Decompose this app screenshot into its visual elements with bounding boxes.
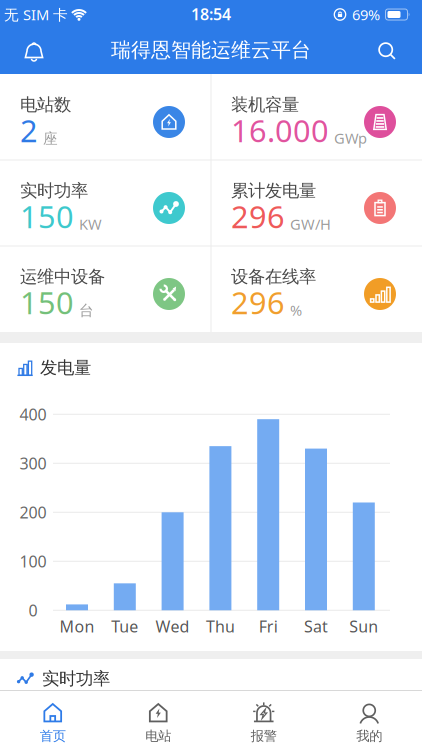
staticText: Wed xyxy=(156,616,190,637)
staticText: Thu xyxy=(206,616,235,637)
staticText: 2 xyxy=(20,110,38,151)
button[interactable]: 电站数 xyxy=(0,74,211,160)
button[interactable]: 设备在线率 xyxy=(211,246,422,332)
staticText: 0 xyxy=(28,600,37,621)
button[interactable]: 实时功率 xyxy=(0,160,211,246)
button[interactable] xyxy=(14,32,54,72)
staticText: % xyxy=(290,300,302,320)
staticText: 100 xyxy=(19,551,46,572)
button[interactable] xyxy=(367,31,407,71)
staticText: GWp xyxy=(334,128,367,148)
staticText: 150 xyxy=(20,196,74,237)
staticText: Sun xyxy=(349,616,378,637)
staticText: 瑞得恩智能运维云平台 xyxy=(111,38,311,62)
staticText: KW xyxy=(79,214,102,234)
staticText: 400 xyxy=(19,404,46,425)
button[interactable]: 首页 xyxy=(0,696,105,748)
staticText: 16.000 xyxy=(231,110,329,151)
staticText: GW/H xyxy=(290,214,331,234)
staticText: Tue xyxy=(111,616,138,637)
staticText: Sat xyxy=(304,616,328,637)
staticText: 69% xyxy=(352,5,380,24)
staticText: 台 xyxy=(79,302,94,320)
staticText: Fri xyxy=(259,616,278,637)
staticText: 装机容量 xyxy=(231,94,299,115)
button[interactable]: 报警 xyxy=(211,696,316,748)
staticText: 发电量 xyxy=(40,357,91,378)
staticText: 我的 xyxy=(356,728,382,744)
button[interactable]: 装机容量 xyxy=(211,74,422,160)
staticText: 18:54 xyxy=(191,3,231,25)
staticText: 首页 xyxy=(40,728,66,744)
staticText: Mon xyxy=(59,616,94,637)
staticText: 报警 xyxy=(251,728,277,744)
staticText: 座 xyxy=(43,130,58,148)
staticText: 296 xyxy=(231,196,285,237)
staticText: 运维中设备 xyxy=(20,266,105,287)
staticText: 实时功率 xyxy=(20,180,88,201)
staticText: 电站数 xyxy=(20,94,71,115)
button[interactable]: 我的 xyxy=(316,696,422,748)
staticText: 200 xyxy=(19,502,46,523)
staticText: 296 xyxy=(231,282,285,323)
staticText: 150 xyxy=(20,282,74,323)
staticText: 累计发电量 xyxy=(231,180,316,201)
staticText: 无 SIM 卡 xyxy=(4,5,68,24)
staticText: 300 xyxy=(19,453,46,474)
staticText: 实时功率 xyxy=(42,668,110,689)
button[interactable]: 电站 xyxy=(105,696,211,748)
button[interactable]: 运维中设备 xyxy=(0,246,211,332)
button[interactable]: 累计发电量 xyxy=(211,160,422,246)
staticText: 设备在线率 xyxy=(231,266,316,287)
staticText: 电站 xyxy=(145,728,171,744)
